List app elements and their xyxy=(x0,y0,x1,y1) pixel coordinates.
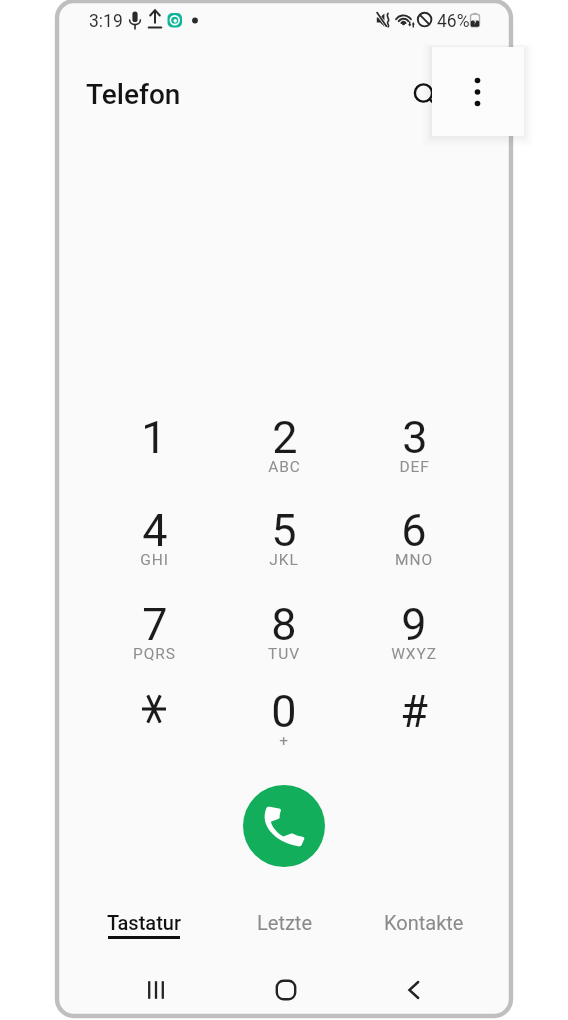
staticText: Telefon xyxy=(86,78,181,111)
button[interactable]: Kontakte xyxy=(356,898,492,950)
button[interactable]: 7 xyxy=(106,584,202,672)
button[interactable]: 2 xyxy=(236,397,332,485)
button[interactable]: Home xyxy=(252,962,320,1018)
button[interactable]: # xyxy=(366,671,462,759)
button[interactable]: 6 xyxy=(366,490,462,578)
button[interactable]: More options xyxy=(432,47,524,136)
button[interactable]: Telefon xyxy=(86,78,181,111)
staticText: GHI xyxy=(140,551,169,569)
staticText: WXYZ xyxy=(391,645,437,663)
staticText: 9 xyxy=(401,598,427,651)
button[interactable]: 0 xyxy=(236,671,332,759)
staticText: 3 xyxy=(402,411,428,464)
staticText: 7 xyxy=(142,598,168,651)
staticText: PQRS xyxy=(133,645,176,663)
staticText: + xyxy=(279,732,289,750)
button[interactable]: Call xyxy=(243,785,325,867)
button[interactable] xyxy=(106,671,202,759)
button[interactable]: 3 xyxy=(366,397,462,485)
staticText: DEF xyxy=(399,458,430,476)
button[interactable]: 1 xyxy=(106,397,202,485)
button[interactable]: Tastatur xyxy=(76,898,212,950)
staticText: 6 xyxy=(401,504,427,557)
staticText: 46% xyxy=(437,11,470,32)
staticText: Tastatur xyxy=(107,911,181,934)
button[interactable]: Search xyxy=(401,71,446,116)
button[interactable]: 4 xyxy=(106,490,202,578)
staticText: 2 xyxy=(272,411,298,464)
button[interactable]: Letzte xyxy=(216,898,352,950)
staticText: # xyxy=(400,685,428,738)
staticText: 8 xyxy=(271,598,297,651)
staticText: ABC xyxy=(268,458,301,476)
staticText: 5 xyxy=(271,504,297,557)
button[interactable]: 9 xyxy=(366,584,462,672)
button[interactable]: Recent apps xyxy=(122,962,190,1018)
staticText: TUV xyxy=(268,645,300,663)
staticText: 3:19 xyxy=(89,11,123,32)
button[interactable]: 5 xyxy=(236,490,332,578)
staticText: MNO xyxy=(395,551,433,569)
staticText: Letzte xyxy=(257,911,312,934)
button[interactable]: 8 xyxy=(236,584,332,672)
staticText: Kontakte xyxy=(384,911,464,934)
button[interactable]: Back xyxy=(381,962,449,1018)
staticText: 0 xyxy=(271,685,297,738)
staticText: 4 xyxy=(142,504,168,557)
staticText: 1 xyxy=(141,411,167,464)
staticText: JKL xyxy=(269,551,299,569)
